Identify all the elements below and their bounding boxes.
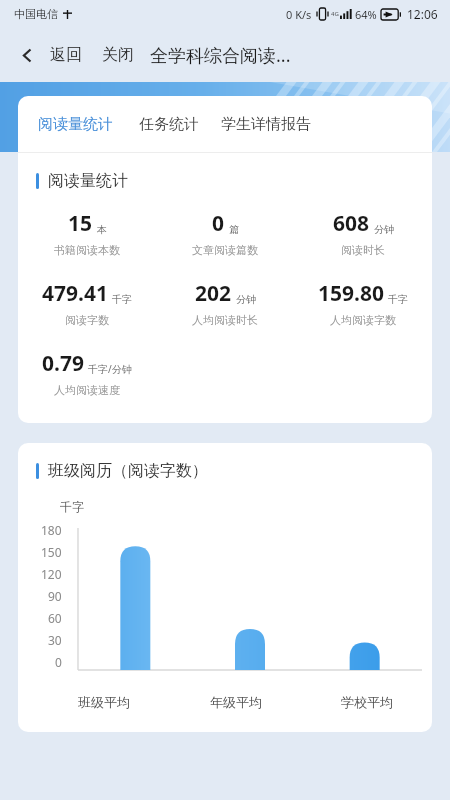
button[interactable]: Back — [10, 38, 44, 72]
staticText: 分钟 — [236, 293, 256, 306]
staticText: 4G — [331, 10, 339, 18]
button[interactable]: 任务统计 — [139, 107, 199, 142]
staticText: 年级平均 — [210, 694, 262, 710]
staticText: 60 — [48, 610, 62, 626]
staticText: 千字 — [112, 293, 132, 306]
staticText: 篇 — [229, 223, 239, 236]
staticText: 0.79 — [42, 349, 84, 378]
button[interactable]: 阅读量统计 — [38, 107, 113, 142]
staticText: 0 — [212, 209, 225, 238]
staticText: 0 K/s — [286, 7, 312, 22]
staticText: 90 — [48, 588, 62, 604]
staticText: 阅读量统计 — [48, 171, 128, 191]
staticText: 0 — [55, 654, 62, 670]
staticText: 159.80 — [318, 279, 384, 308]
staticText: 120 — [41, 566, 62, 582]
staticText: 阅读量统计 — [38, 115, 113, 134]
staticText: 中国电信 — [14, 7, 58, 21]
staticText: 202 — [195, 279, 232, 308]
staticText: 180 — [41, 522, 62, 538]
staticText: 分钟 — [374, 223, 394, 236]
button[interactable]: 返回 — [44, 39, 88, 71]
staticText: 阅读字数 — [65, 313, 109, 327]
staticText: 479.41 — [42, 279, 108, 308]
staticText: 学生详情报告 — [221, 115, 311, 134]
staticText: 书籍阅读本数 — [54, 243, 120, 257]
staticText: 150 — [41, 544, 62, 560]
staticText: 班级平均 — [78, 694, 130, 710]
button[interactable]: 学生详情报告 — [221, 107, 311, 142]
staticText: 文章阅读篇数 — [192, 243, 258, 257]
staticText: 千字 — [388, 293, 408, 306]
staticText: 12:06 — [407, 6, 438, 22]
staticText: 学校平均 — [341, 694, 393, 710]
staticText: 关闭 — [102, 45, 134, 65]
staticText: 阅读时长 — [341, 243, 385, 257]
staticText: 任务统计 — [139, 115, 199, 134]
staticText: 608 — [333, 209, 370, 238]
staticText: 64% — [355, 7, 377, 22]
staticText: 30 — [48, 632, 62, 648]
staticText: 人均阅读时长 — [192, 313, 258, 327]
staticText: 全学科综合阅读... — [150, 43, 291, 68]
staticText: 本 — [97, 223, 107, 236]
staticText: 班级阅历（阅读字数） — [48, 461, 208, 481]
button[interactable]: 关闭 — [96, 39, 140, 71]
staticText: 15 — [68, 209, 93, 238]
staticText: 千字 — [60, 499, 84, 514]
staticText: 人均阅读字数 — [330, 313, 396, 327]
staticText: 人均阅读速度 — [54, 383, 120, 397]
staticText: 返回 — [50, 45, 82, 65]
staticText: 千字/分钟 — [88, 362, 132, 376]
